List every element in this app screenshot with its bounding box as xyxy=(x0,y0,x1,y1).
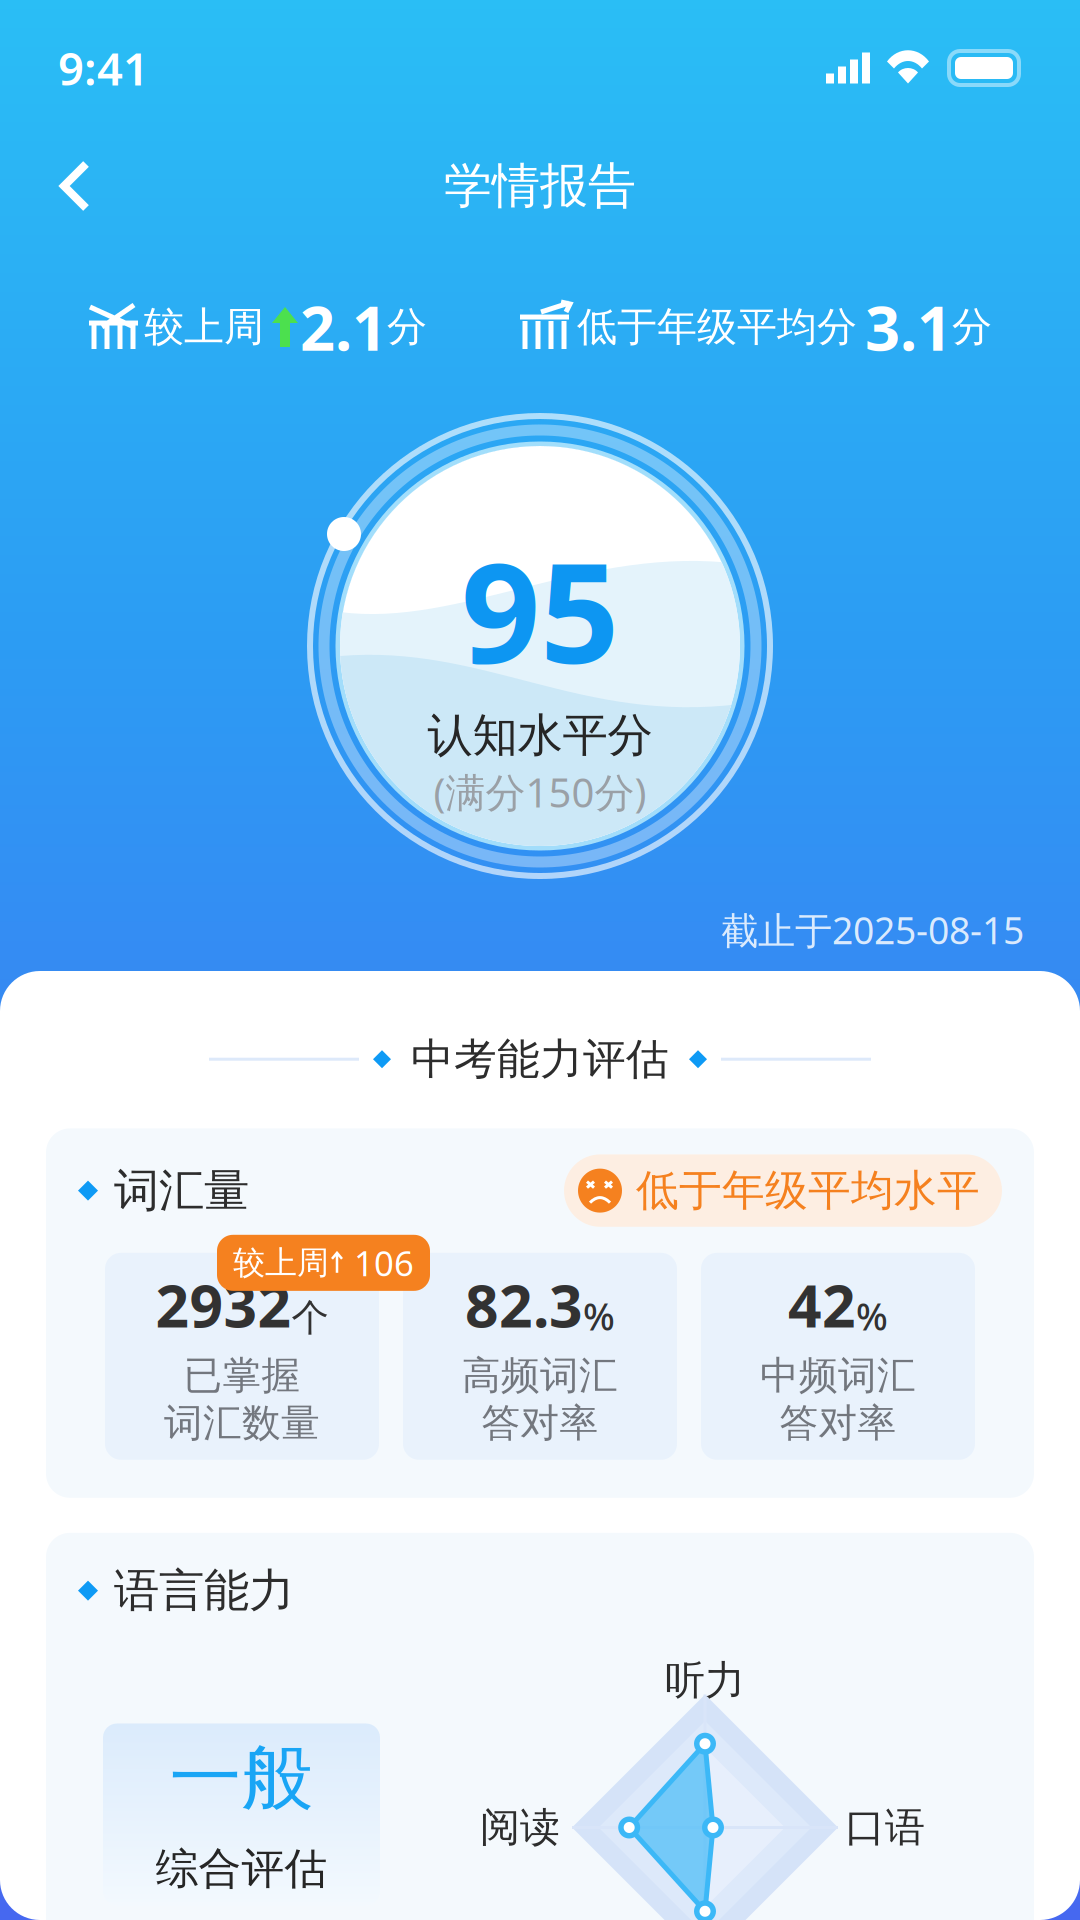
staticText: 口语 xyxy=(845,1803,925,1852)
staticText: 中考能力评估 xyxy=(411,1033,669,1085)
staticText: 中频词汇 xyxy=(760,1352,916,1399)
staticText: 答对率 xyxy=(779,1399,896,1447)
staticText: 82.3 xyxy=(465,1266,583,1344)
staticText: 2932 xyxy=(155,1266,291,1344)
staticText: % xyxy=(583,1291,615,1341)
staticText: 词汇数量 xyxy=(164,1399,320,1447)
staticText: 语言能力 xyxy=(114,1563,294,1618)
staticText: 较上周 xyxy=(144,302,264,351)
staticText: 2.1 xyxy=(300,286,387,368)
staticText: 认知水平分 xyxy=(427,708,652,763)
staticText: 较上周 xyxy=(233,1243,329,1282)
staticText: % xyxy=(856,1291,888,1341)
staticText: 一般 xyxy=(169,1734,313,1822)
staticText: 低于年级平均分 xyxy=(577,302,857,351)
staticText: 阅读 xyxy=(480,1803,560,1852)
staticText: 3.1 xyxy=(865,286,952,368)
staticText: 95 xyxy=(461,517,619,702)
staticText: 词汇量 xyxy=(114,1163,249,1218)
staticText: 已掌握 xyxy=(183,1352,300,1399)
staticText: 学情报告 xyxy=(444,156,636,215)
staticText: 综合评估 xyxy=(155,1842,327,1895)
staticText: (满分150分) xyxy=(433,765,646,818)
staticText: 42 xyxy=(788,1266,856,1344)
staticText: 106 xyxy=(354,1240,414,1286)
staticText: 9:41 xyxy=(58,38,149,98)
staticText: 答对率 xyxy=(481,1399,598,1447)
staticText: 低于年级平均水平 xyxy=(636,1164,980,1217)
staticText: 分 xyxy=(952,302,992,351)
staticText: 听力 xyxy=(665,1656,745,1705)
staticText: 高频词汇 xyxy=(462,1352,618,1399)
staticText: 截止于2025-08-15 xyxy=(721,905,1024,955)
staticText: 个 xyxy=(291,1295,328,1341)
button[interactable]: Back xyxy=(36,146,114,226)
staticText: 分 xyxy=(387,302,427,351)
